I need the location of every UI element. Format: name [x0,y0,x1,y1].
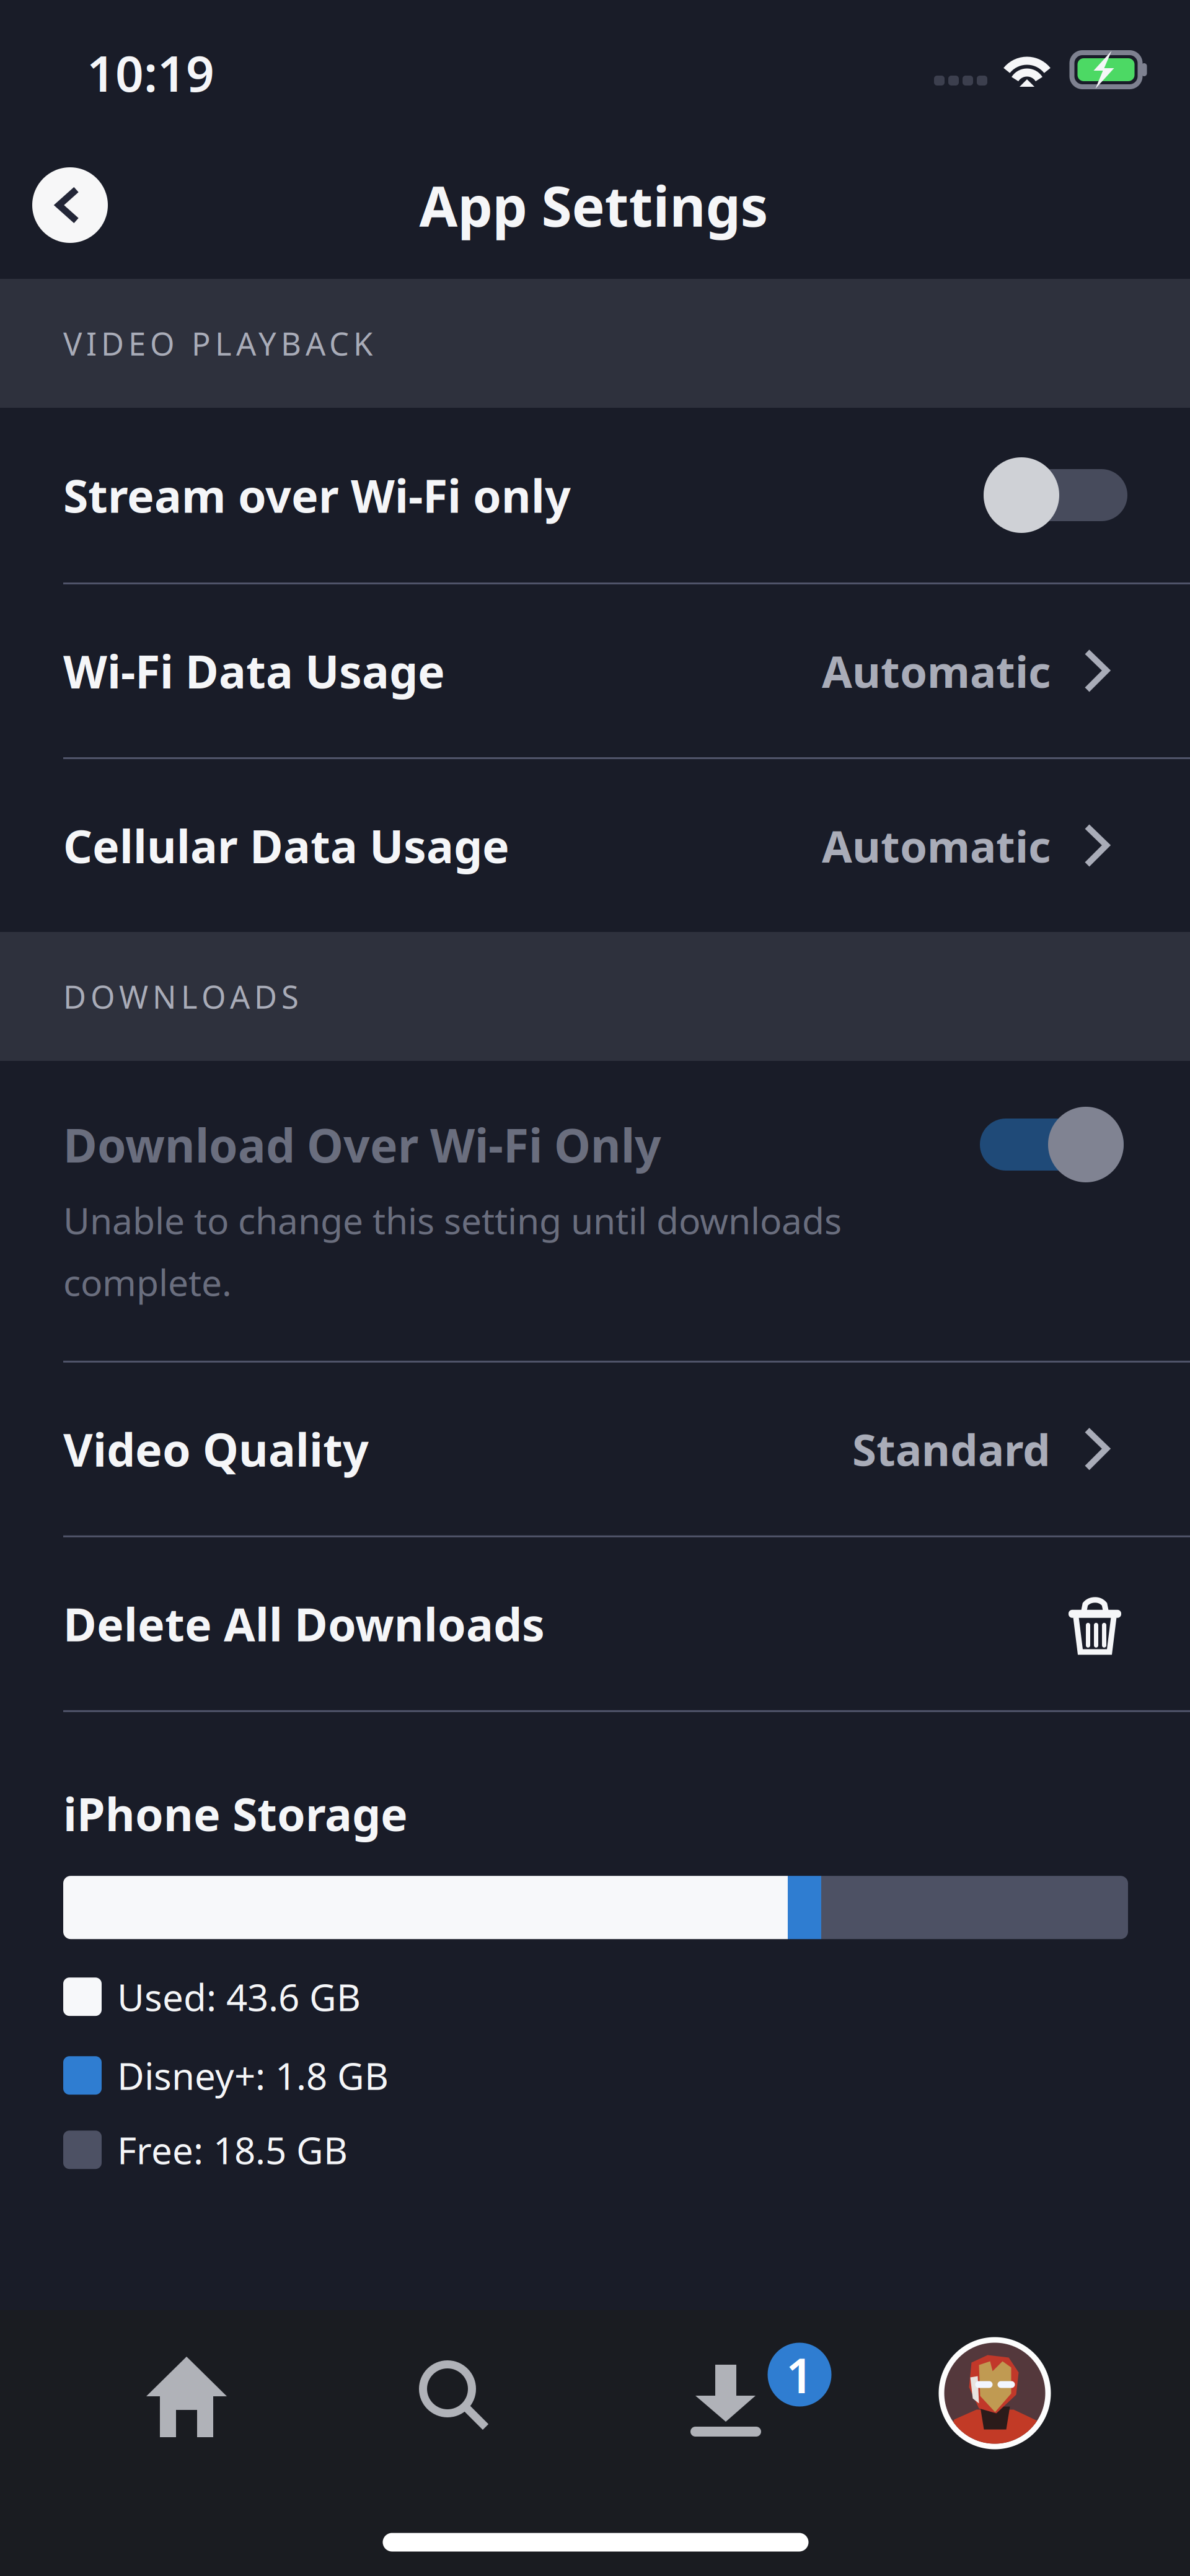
staticText: Automatic [822,642,1051,700]
staticText: Automatic [822,816,1051,875]
staticText: Unable to change this setting until down… [63,1196,842,1244]
staticText: Cellular Data Usage [63,815,509,876]
staticText: DOWNLOADS [63,976,299,1017]
staticText: Used: 43.6 GB [117,1972,361,2021]
staticText: Download Over Wi-Fi Only [63,1114,661,1175]
button[interactable]: Cellular Data Usage [0,759,1190,932]
staticText: VIDEO PLAYBACK [63,322,372,364]
staticText: 1 [786,2343,813,2406]
staticText: 10:19 [87,40,214,105]
staticText: Standard [852,1420,1051,1478]
staticText: Disney+: 1.8 GB [117,2051,389,2100]
button[interactable]: Back [32,167,108,243]
staticText: iPhone Storage [63,1783,408,1844]
staticText: App Settings [419,168,768,242]
button[interactable]: Delete All Downloads [0,1537,1190,1710]
button[interactable]: Downloads [614,2310,837,2496]
button[interactable]: Home [94,2310,280,2496]
staticText: Free: 18.5 GB [117,2125,348,2175]
button[interactable]: Video Quality [0,1363,1190,1535]
button[interactable]: Wi-Fi Data Usage [0,584,1190,757]
staticText: Delete All Downloads [63,1594,545,1654]
staticText: Video Quality [63,1419,369,1479]
staticText: complete. [63,1258,232,1306]
button[interactable]: Stream over Wi-Fi only [0,408,1190,582]
button[interactable]: Profile [927,2310,1063,2496]
staticText: Stream over Wi-Fi only [63,465,571,525]
button[interactable]: Search [363,2310,549,2496]
staticText: Wi-Fi Data Usage [63,641,445,701]
